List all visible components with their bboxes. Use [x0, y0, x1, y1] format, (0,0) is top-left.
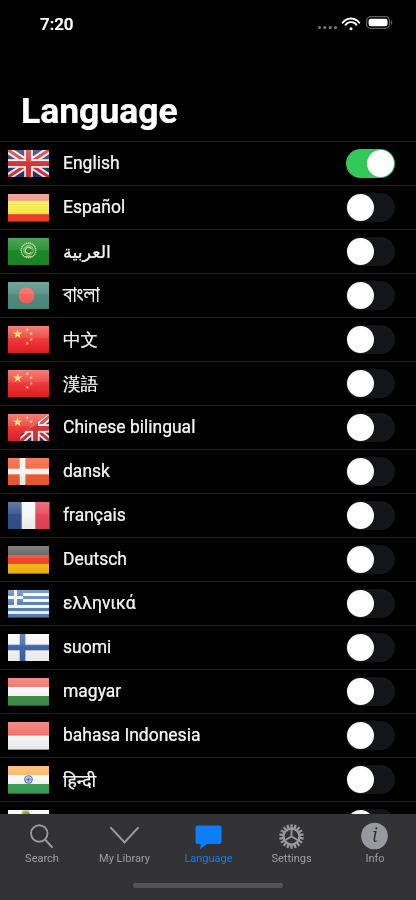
staticText: français [63, 505, 126, 526]
button[interactable]: Off [346, 237, 395, 266]
button[interactable]: Off [346, 369, 395, 398]
button[interactable]: Off [346, 721, 395, 750]
button[interactable]: বাংলা [0, 274, 416, 317]
staticText: English [63, 153, 120, 174]
button[interactable]: On [346, 149, 395, 178]
button[interactable]: Search [0, 814, 83, 864]
staticText: bahasa Indonesia [63, 725, 201, 746]
staticText: suomi [63, 637, 112, 658]
button[interactable]: Settings [250, 814, 333, 864]
button[interactable]: bahasa Indonesia [0, 714, 416, 757]
button[interactable]: Off [346, 281, 395, 310]
staticText: Info [365, 852, 385, 864]
staticText: My Library [99, 852, 150, 864]
button[interactable]: Off [346, 589, 395, 618]
staticText: Language [21, 90, 178, 132]
button[interactable]: Info [333, 814, 416, 864]
button[interactable]: Chinese bilingual [0, 406, 416, 449]
button[interactable]: English [0, 142, 416, 185]
button[interactable]: Deutsch [0, 538, 416, 581]
button[interactable]: italiano [0, 802, 416, 845]
button[interactable]: Off [346, 633, 395, 662]
button[interactable]: Off [346, 501, 395, 530]
staticText: বাংলা [63, 284, 100, 307]
staticText: 漢語 [63, 373, 98, 395]
staticText: हिन्दी [63, 768, 97, 792]
staticText: Language [184, 852, 233, 864]
staticText: 7:20 [40, 14, 74, 34]
button[interactable]: My Library [83, 814, 166, 864]
button[interactable]: Español [0, 186, 416, 229]
staticText: Search [25, 852, 59, 864]
staticText: 中文 [63, 329, 98, 351]
button[interactable]: हिन्दी [0, 758, 416, 801]
button[interactable]: suomi [0, 626, 416, 669]
button[interactable]: dansk [0, 450, 416, 493]
button[interactable]: ελληνικά [0, 582, 416, 625]
button[interactable]: Off [346, 457, 395, 486]
staticText: Deutsch [63, 549, 127, 570]
staticText: italiano [63, 813, 121, 834]
button[interactable]: magyar [0, 670, 416, 713]
staticText: ελληνικά [63, 593, 136, 614]
button[interactable]: Off [346, 325, 395, 354]
staticText: magyar [63, 681, 122, 702]
staticText: Settings [271, 852, 312, 864]
other: My Library [110, 824, 139, 849]
staticText: dansk [63, 461, 110, 482]
other: Language [195, 824, 222, 849]
staticText: Chinese bilingual [63, 417, 196, 438]
other: Settings [279, 824, 304, 849]
button[interactable]: Off [346, 413, 395, 442]
button[interactable]: français [0, 494, 416, 537]
staticText: العربية [63, 242, 111, 262]
button[interactable]: 中文 [0, 318, 416, 361]
button[interactable]: Off [346, 809, 395, 838]
button[interactable]: 漢語 [0, 362, 416, 405]
staticText: Español [63, 197, 126, 218]
button[interactable]: العربية [0, 230, 416, 273]
button[interactable]: Off [346, 193, 395, 222]
other: Info [361, 823, 388, 849]
button[interactable]: Off [346, 765, 395, 794]
other: Search [29, 824, 54, 849]
button[interactable]: Off [346, 545, 395, 574]
staticText: i [372, 822, 378, 848]
button[interactable]: Language [167, 814, 250, 864]
button[interactable]: Off [346, 677, 395, 706]
